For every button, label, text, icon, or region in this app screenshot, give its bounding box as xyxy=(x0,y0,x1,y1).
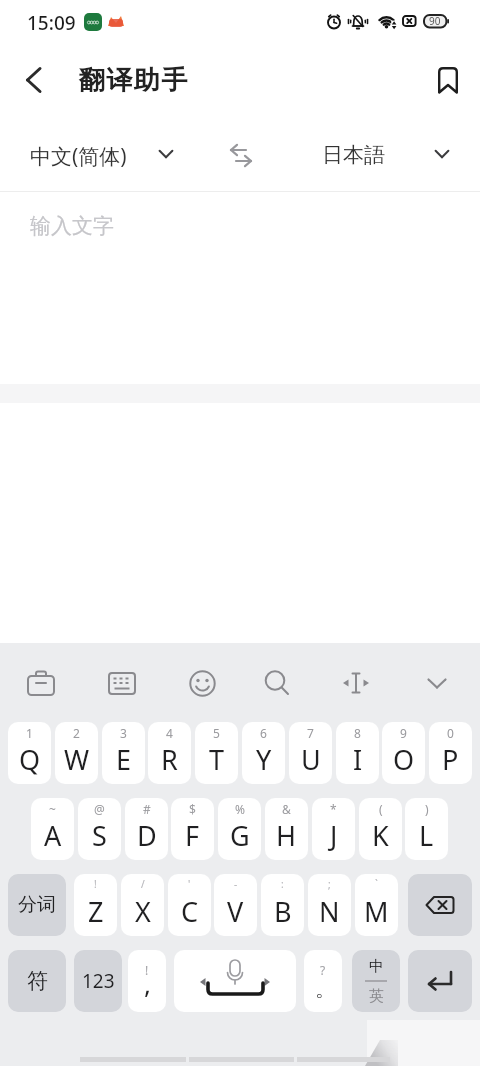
button[interactable]: ( xyxy=(359,798,402,860)
staticText: ' xyxy=(188,877,191,891)
staticText: Q xyxy=(19,741,41,778)
staticText: J xyxy=(330,817,338,854)
button[interactable]: & xyxy=(265,798,308,860)
staticText: ` xyxy=(375,877,378,891)
staticText: 123 xyxy=(82,968,115,994)
button[interactable]: 6 xyxy=(242,722,285,784)
button[interactable]: ! xyxy=(128,950,166,1012)
button[interactable]: * xyxy=(312,798,355,860)
staticText: 输入文字 xyxy=(30,213,114,239)
staticText: $ xyxy=(189,801,196,817)
button[interactable]: 123 xyxy=(74,950,122,1012)
button[interactable]: @ xyxy=(78,798,121,860)
button[interactable] xyxy=(174,950,296,1012)
button[interactable]: ) xyxy=(405,798,448,860)
staticText: # xyxy=(143,801,151,817)
button[interactable]: 8 xyxy=(336,722,379,784)
button[interactable] xyxy=(100,661,144,705)
button[interactable]: 5 xyxy=(195,722,238,784)
button[interactable]: 符 xyxy=(8,950,66,1012)
staticText: 5 xyxy=(213,725,220,741)
staticText: E xyxy=(116,741,132,778)
button[interactable]: ! xyxy=(74,874,117,936)
button[interactable] xyxy=(415,661,459,705)
button[interactable]: 分词 xyxy=(8,874,66,936)
staticText: G xyxy=(230,817,250,854)
button[interactable] xyxy=(218,132,264,178)
button[interactable]: 中 xyxy=(352,950,400,1012)
staticText: - xyxy=(234,877,238,891)
button[interactable]: % xyxy=(218,798,261,860)
button[interactable]: 日本語 xyxy=(308,132,468,180)
button[interactable]: / xyxy=(121,874,164,936)
staticText: D xyxy=(137,817,157,854)
staticText: N xyxy=(319,893,340,930)
staticText: I xyxy=(353,741,363,778)
button[interactable] xyxy=(180,661,224,705)
button[interactable]: ` xyxy=(355,874,398,936)
staticText: 6 xyxy=(260,725,267,741)
button[interactable] xyxy=(408,950,472,1012)
staticText: ? xyxy=(320,962,326,978)
staticText: W xyxy=(64,741,90,778)
button[interactable]: ' xyxy=(168,874,211,936)
button[interactable]: 3 xyxy=(102,722,145,784)
button[interactable]: 4 xyxy=(148,722,191,784)
staticText: 2 xyxy=(73,725,80,741)
button[interactable] xyxy=(428,60,468,100)
button[interactable]: ; xyxy=(308,874,351,936)
staticText: 9 xyxy=(400,725,407,741)
staticText: T xyxy=(209,741,225,778)
staticText: V xyxy=(227,893,244,930)
button[interactable] xyxy=(19,661,63,705)
staticText: U xyxy=(301,741,321,778)
staticText: / xyxy=(141,877,145,891)
staticText: ) xyxy=(425,801,429,817)
staticText: 4 xyxy=(166,725,173,741)
staticText: , xyxy=(144,966,151,1001)
staticText: 。 xyxy=(315,977,335,1002)
button[interactable]: # xyxy=(125,798,168,860)
button[interactable]: 0 xyxy=(429,722,472,784)
staticText: A xyxy=(44,817,62,854)
button[interactable]: ~ xyxy=(31,798,74,860)
button[interactable]: - xyxy=(214,874,257,936)
staticText: % xyxy=(235,801,245,817)
staticText: 分词 xyxy=(18,893,56,917)
staticText: L xyxy=(419,817,434,854)
button[interactable] xyxy=(408,874,472,936)
staticText: K xyxy=(372,817,389,854)
button[interactable]: 9 xyxy=(382,722,425,784)
staticText: 8 xyxy=(354,725,361,741)
staticText: 英 xyxy=(369,987,384,1006)
staticText: ! xyxy=(94,877,97,891)
staticText: 3 xyxy=(120,725,127,741)
staticText: ( xyxy=(379,801,383,817)
staticText: 1 xyxy=(26,725,33,741)
staticText: 0 xyxy=(447,725,454,741)
button[interactable]: 7 xyxy=(289,722,332,784)
staticText: Y xyxy=(256,741,272,778)
button[interactable]: : xyxy=(261,874,304,936)
button[interactable]: 中文(简体) xyxy=(14,132,194,180)
button[interactable]: ? xyxy=(304,950,342,1012)
staticText: 90 xyxy=(429,14,441,28)
staticText: F xyxy=(185,817,200,854)
staticText: @ xyxy=(94,801,105,817)
staticText: ; xyxy=(328,877,331,891)
staticText: 15:09 xyxy=(27,10,76,36)
staticText: M xyxy=(364,893,389,930)
button[interactable] xyxy=(334,661,378,705)
button[interactable]: 1 xyxy=(8,722,51,784)
staticText: : xyxy=(281,877,284,891)
staticText: Z xyxy=(88,893,104,930)
staticText: C xyxy=(181,893,199,930)
button[interactable]: 2 xyxy=(55,722,98,784)
staticText: O xyxy=(393,741,415,778)
staticText: 翻译助手 xyxy=(78,64,188,97)
staticText: H xyxy=(276,817,297,854)
button[interactable]: $ xyxy=(171,798,214,860)
button[interactable] xyxy=(255,661,299,705)
staticText: ~ xyxy=(49,801,56,817)
button[interactable] xyxy=(14,60,54,100)
